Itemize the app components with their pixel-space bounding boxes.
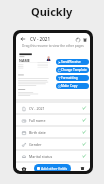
button[interactable]: Marital status (16, 151, 90, 161)
staticText: Make Copy (61, 84, 78, 88)
button[interactable]: Make Copy (56, 83, 89, 89)
staticText: NAME (19, 58, 30, 63)
button[interactable]: Gender (16, 139, 90, 149)
button[interactable]: Change Template (56, 67, 89, 73)
staticText: CV - 2021 (30, 36, 51, 42)
staticText: Birth date (29, 130, 46, 135)
button[interactable]: Formatting (56, 75, 89, 81)
button[interactable]: Add other fields (34, 164, 71, 171)
staticText: Full name (29, 118, 46, 123)
button[interactable]: Back (20, 36, 26, 42)
button[interactable]: Delete (81, 36, 88, 43)
button[interactable]: CV - 2021 (16, 103, 90, 113)
button[interactable]: Undo (74, 36, 81, 43)
staticText: Quickly (31, 4, 73, 19)
staticText: Send/Receive (61, 60, 81, 64)
staticText: Marital status (29, 154, 53, 159)
staticText: Add other fields (41, 166, 68, 171)
staticText: CV - 2021 (29, 106, 45, 111)
staticText: Formatting (61, 76, 78, 80)
staticText: Change Template (61, 68, 87, 72)
staticText: Drag this resume to view the other pages (22, 44, 84, 48)
staticText: Gender (29, 142, 42, 147)
button[interactable]: Birth date (16, 127, 90, 137)
button[interactable]: Send/Receive (56, 59, 89, 65)
button[interactable]: Full name (16, 115, 90, 125)
button[interactable]: More (79, 165, 86, 171)
button[interactable]: Scan document (20, 165, 27, 171)
